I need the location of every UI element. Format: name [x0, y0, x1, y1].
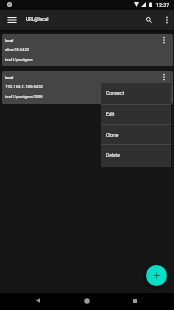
- button[interactable]: Home: [77, 293, 96, 310]
- staticText: Connect: [106, 90, 125, 96]
- button[interactable]: Back: [28, 293, 47, 310]
- button[interactable]: Add connection: [146, 265, 167, 286]
- button[interactable]: Search: [139, 10, 159, 30]
- button[interactable]: local: [2, 34, 173, 66]
- button[interactable]: Delete: [101, 145, 171, 166]
- staticText: alice15:5432: [5, 47, 30, 52]
- button[interactable]: Open navigation drawer: [1, 10, 22, 30]
- staticText: 192.168.1.180:5432: [5, 84, 43, 89]
- staticText: Edit: [106, 111, 115, 117]
- staticText: local: [5, 38, 14, 42]
- staticText: URL@local: [26, 17, 49, 22]
- button[interactable]: Connection options: [156, 71, 173, 104]
- staticText: test1/postgres: [5, 57, 33, 62]
- button[interactable]: local: [2, 71, 173, 104]
- staticText: Delete: [106, 152, 120, 158]
- button[interactable]: Edit: [101, 104, 171, 125]
- staticText: 12:37: [156, 2, 170, 8]
- button[interactable]: Connect: [101, 83, 171, 104]
- staticText: local: [5, 75, 14, 79]
- staticText: test1/postgres/SSH: [5, 94, 43, 99]
- button[interactable]: More options: [159, 10, 174, 30]
- button[interactable]: Connection options: [156, 34, 173, 66]
- button[interactable]: Recent apps: [125, 293, 144, 310]
- button[interactable]: Clone: [101, 125, 171, 146]
- staticText: Clone: [106, 132, 119, 138]
